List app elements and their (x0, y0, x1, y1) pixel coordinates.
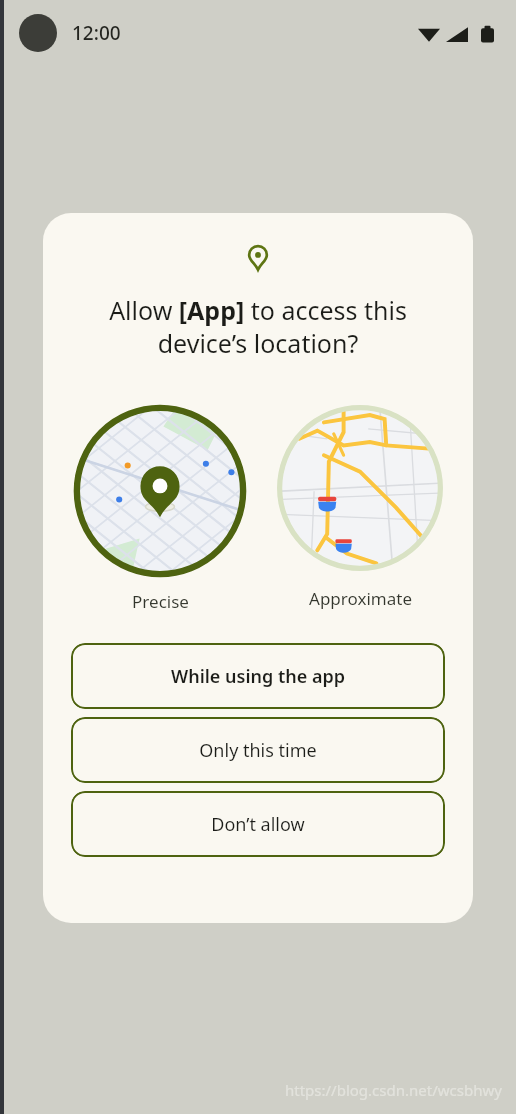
button[interactable]: While using the app (71, 643, 445, 709)
button[interactable]: Only this time (71, 717, 445, 783)
staticText: Allow [App] to access this device’s loca… (65, 293, 451, 360)
staticText: Approximate (309, 587, 412, 610)
staticText: https://blog.csdn.net/wcsbhwy (285, 1080, 502, 1100)
staticText: Precise (132, 590, 189, 613)
staticText: 12:00 (72, 20, 121, 46)
button[interactable]: Don’t allow (71, 791, 445, 857)
staticText: While using the app (171, 664, 345, 689)
staticText: Only this time (199, 738, 317, 763)
staticText: Don’t allow (211, 812, 305, 837)
button[interactable]: Approximate (274, 404, 446, 612)
button[interactable]: Precise (71, 404, 249, 615)
